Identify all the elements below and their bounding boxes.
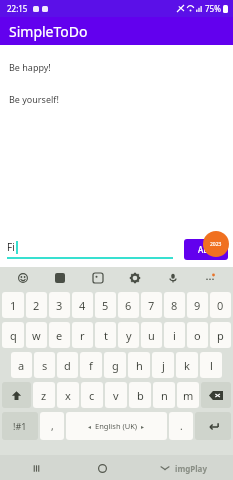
- button[interactable]: u: [141, 322, 162, 348]
- button[interactable]: m: [177, 382, 199, 408]
- staticText: Be yourself!: [9, 93, 59, 105]
- button[interactable]: Backspace: [201, 382, 231, 408]
- staticText: 6: [125, 298, 132, 313]
- button[interactable]: Emoji: [14, 269, 32, 287]
- button[interactable]: t: [95, 322, 116, 348]
- button[interactable]: 2: [26, 292, 47, 318]
- button[interactable]: ◂: [66, 412, 167, 440]
- staticText: 1: [10, 298, 17, 313]
- staticText: English (UK): [95, 421, 138, 431]
- staticText: 8: [171, 298, 178, 313]
- button[interactable]: .: [169, 412, 193, 440]
- button[interactable]: 3: [49, 292, 70, 318]
- button[interactable]: w: [26, 322, 47, 348]
- staticText: g: [112, 358, 119, 373]
- button[interactable]: h: [128, 352, 150, 378]
- button[interactable]: !#1: [2, 412, 38, 440]
- button[interactable]: x: [57, 382, 79, 408]
- staticText: ,: [51, 419, 54, 433]
- staticText: 22:15: [7, 3, 28, 14]
- staticText: d: [64, 358, 71, 373]
- staticText: 2023: [210, 241, 222, 248]
- staticText: 75%: [205, 3, 221, 14]
- button[interactable]: r: [72, 322, 93, 348]
- staticText: z: [41, 388, 47, 403]
- staticText: ADD: [198, 244, 215, 255]
- staticText: l: [210, 358, 213, 373]
- button[interactable]: Be happy!: [0, 58, 233, 76]
- button[interactable]: j: [152, 352, 174, 378]
- button[interactable]: Enter: [195, 412, 231, 440]
- staticText: b: [137, 388, 144, 403]
- button[interactable]: q: [2, 322, 24, 348]
- staticText: o: [194, 328, 201, 343]
- button[interactable]: Home: [92, 458, 112, 478]
- staticText: k: [184, 358, 190, 373]
- staticText: t: [104, 328, 108, 343]
- button[interactable]: n: [153, 382, 175, 408]
- button[interactable]: a: [11, 352, 32, 378]
- button[interactable]: v: [105, 382, 127, 408]
- button[interactable]: i: [164, 322, 185, 348]
- button[interactable]: g: [104, 352, 126, 378]
- button[interactable]: 7: [141, 292, 162, 318]
- staticText: SimpleToDo: [9, 22, 88, 41]
- staticText: 4: [79, 298, 86, 313]
- staticText: 7: [148, 298, 155, 313]
- button[interactable]: Stickers: [89, 269, 107, 287]
- staticText: ▸: [141, 423, 145, 430]
- button[interactable]: f: [80, 352, 102, 378]
- staticText: w: [32, 328, 41, 343]
- button[interactable]: y: [118, 322, 139, 348]
- button[interactable]: More options: [201, 269, 219, 287]
- staticText: c: [89, 388, 95, 403]
- staticText: imgPlay: [175, 463, 207, 474]
- button[interactable]: Voice input: [164, 269, 182, 287]
- staticText: e: [56, 328, 63, 343]
- staticText: x: [65, 388, 71, 403]
- staticText: .: [180, 419, 183, 433]
- staticText: !#1: [13, 420, 27, 432]
- button[interactable]: 5: [95, 292, 116, 318]
- button[interactable]: Shift: [2, 382, 31, 408]
- button[interactable]: 6: [118, 292, 139, 318]
- button[interactable]: s: [34, 352, 55, 378]
- staticText: f: [89, 358, 93, 373]
- staticText: ◂: [88, 423, 92, 430]
- staticText: j: [162, 358, 165, 373]
- staticText: u: [148, 328, 155, 343]
- button[interactable]: ,: [40, 412, 64, 440]
- button[interactable]: z: [33, 382, 55, 408]
- button[interactable]: ADD: [184, 239, 228, 260]
- staticText: 5: [102, 298, 109, 313]
- button[interactable]: Hide keyboard: [157, 460, 173, 476]
- button[interactable]: 1: [2, 292, 24, 318]
- button[interactable]: GIF: [51, 269, 69, 287]
- staticText: h: [136, 358, 143, 373]
- button[interactable]: d: [57, 352, 78, 378]
- staticText: Fi: [7, 240, 15, 254]
- staticText: r: [80, 328, 85, 343]
- button[interactable]: b: [129, 382, 151, 408]
- staticText: 2: [33, 298, 40, 313]
- staticText: a: [18, 358, 25, 373]
- button[interactable]: e: [49, 322, 70, 348]
- button[interactable]: 4: [72, 292, 93, 318]
- staticText: Be happy!: [9, 61, 51, 73]
- button[interactable]: o: [187, 322, 208, 348]
- button[interactable]: Recents: [26, 458, 46, 478]
- button[interactable]: 0: [210, 292, 231, 318]
- button[interactable]: k: [176, 352, 198, 378]
- button[interactable]: 9: [187, 292, 208, 318]
- staticText: q: [10, 328, 17, 343]
- button[interactable]: l: [200, 352, 222, 378]
- button[interactable]: Be yourself!: [0, 90, 233, 108]
- button[interactable]: p: [210, 322, 231, 348]
- staticText: p: [217, 328, 224, 343]
- button[interactable]: 8: [164, 292, 185, 318]
- button[interactable]: Settings: [126, 269, 144, 287]
- staticText: 3: [56, 298, 63, 313]
- staticText: s: [42, 358, 48, 373]
- button[interactable]: c: [81, 382, 103, 408]
- staticText: 0: [217, 298, 224, 313]
